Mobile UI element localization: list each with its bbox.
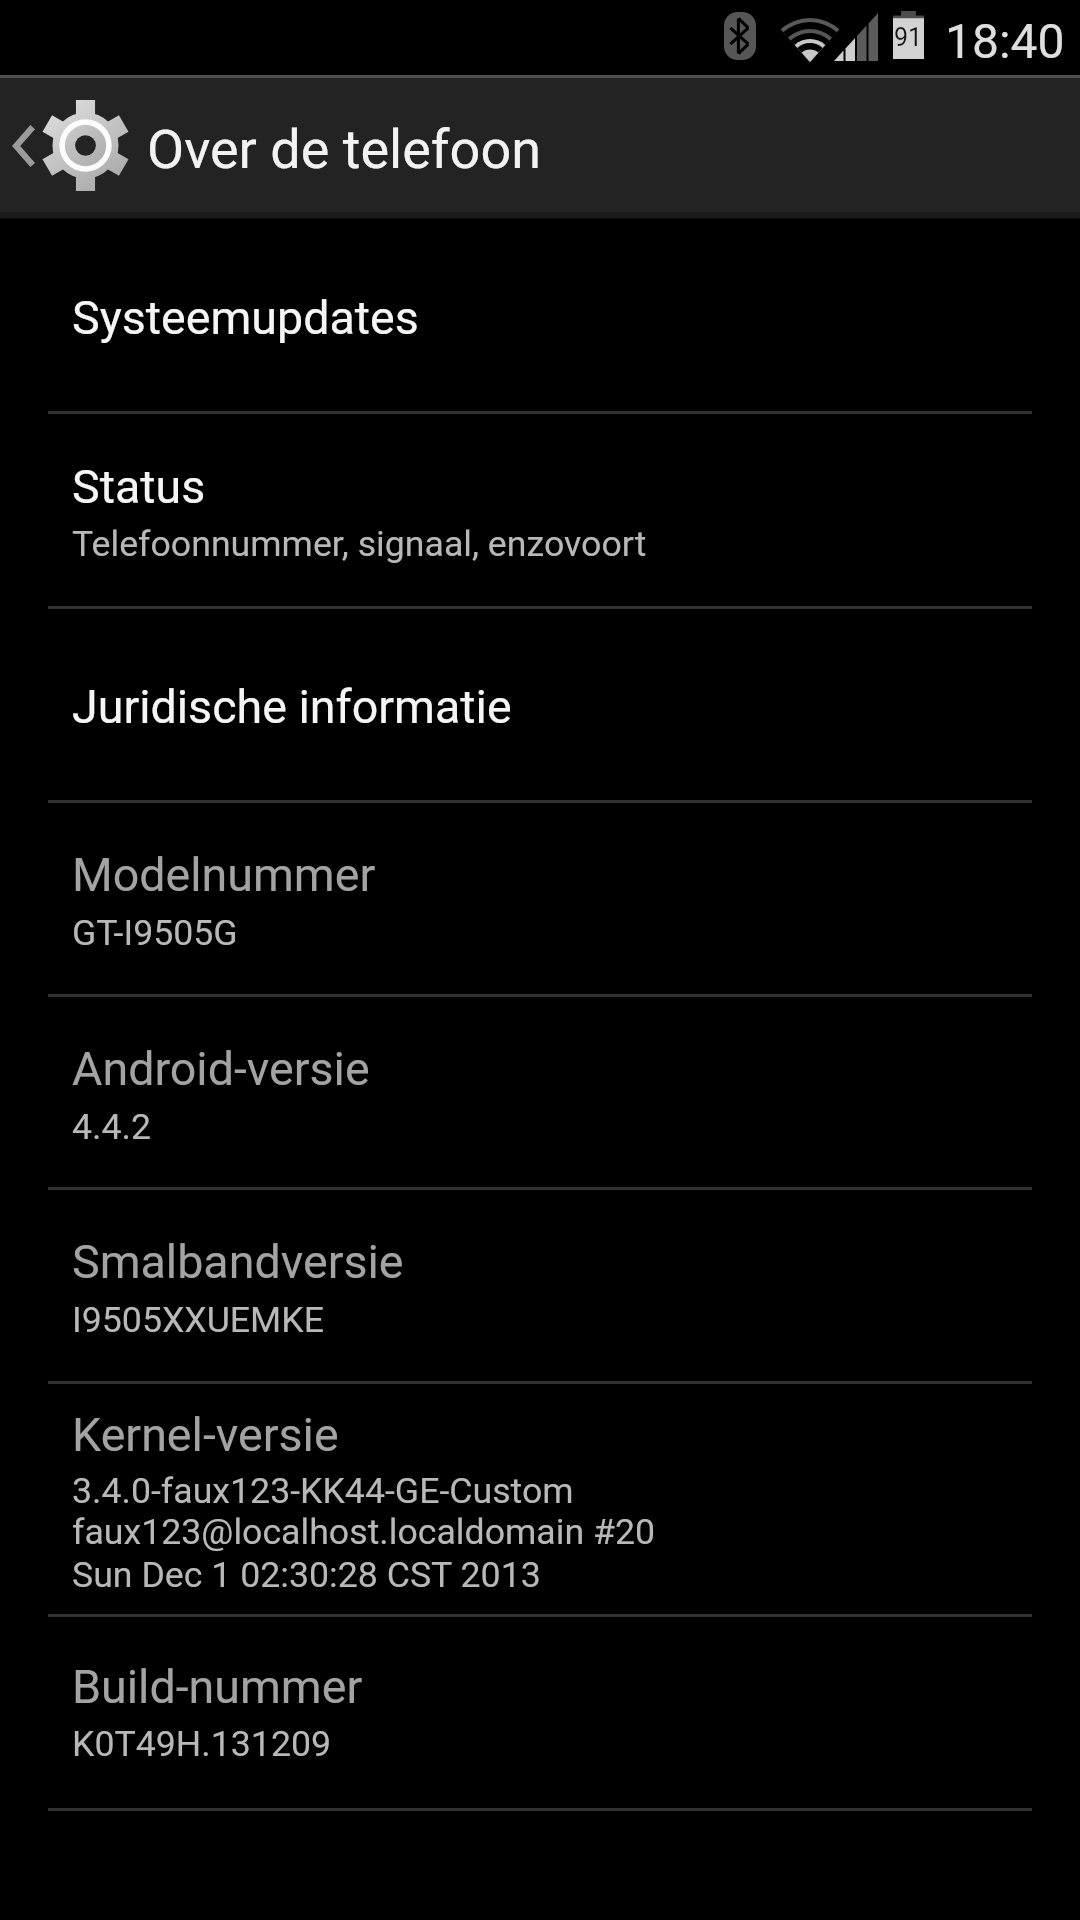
staticText: GT-I9505G <box>72 912 238 954</box>
staticText: I9505XXUEMKE <box>72 1299 324 1341</box>
staticText: Kernel-versie <box>72 1408 339 1463</box>
staticText: faux123@localhost.localdomain #20 <box>72 1511 656 1553</box>
staticText: Status <box>72 460 206 515</box>
staticText: Systeemupdates <box>72 291 419 346</box>
staticText: Modelnummer <box>72 848 376 903</box>
staticText: 91 <box>894 23 923 52</box>
button[interactable]: Modelnummer <box>0 803 1080 994</box>
staticText: Smalbandversie <box>72 1235 404 1290</box>
staticText: 3.4.0-faux123-KK44-GE-Custom <box>72 1470 574 1512</box>
staticText: 18:40 <box>945 13 1065 69</box>
staticText: Over de telefoon <box>147 118 542 181</box>
button[interactable]: Status <box>0 414 1080 606</box>
button[interactable]: Build-nummer <box>0 1617 1080 1808</box>
button[interactable]: Kernel-versie <box>0 1384 1080 1614</box>
staticText: Android-versie <box>72 1042 370 1097</box>
staticText: Juridische informatie <box>72 680 512 735</box>
staticText: Sun Dec 1 02:30:28 CST 2013 <box>72 1554 541 1596</box>
staticText: Telefoonnummer, signaal, enzovoort <box>72 523 647 565</box>
button[interactable]: Android-versie <box>0 997 1080 1187</box>
button[interactable]: Juridische informatie <box>0 609 1080 800</box>
staticText: K0T49H.131209 <box>72 1723 332 1765</box>
staticText: 4.4.2 <box>72 1106 151 1148</box>
button[interactable]: Smalbandversie <box>0 1190 1080 1381</box>
staticText: Build-nummer <box>72 1660 363 1715</box>
button[interactable]: Systeemupdates <box>0 219 1080 411</box>
button[interactable]: Navigate up to Settings <box>0 78 560 212</box>
